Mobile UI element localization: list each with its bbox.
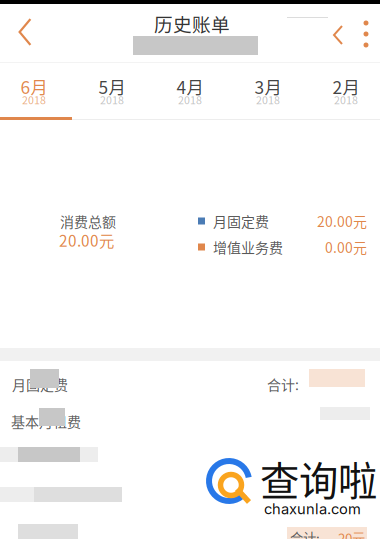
staticText: 2018 <box>22 92 46 107</box>
button[interactable]: Forward <box>327 22 349 48</box>
staticText: 历史账单 <box>154 10 230 37</box>
staticText: 3月 <box>254 74 281 99</box>
staticText: 合计: <box>290 528 320 539</box>
staticText: 查询啦 <box>260 450 377 507</box>
staticText: 合计: <box>267 374 299 394</box>
staticText: 2018 <box>178 92 202 107</box>
button[interactable]: 6月 <box>0 71 72 125</box>
staticText: 月固定费 <box>213 211 269 231</box>
staticText: 2月 <box>332 74 359 99</box>
staticText: 20.00元 <box>59 229 114 251</box>
staticText: 4月 <box>176 74 203 99</box>
button[interactable]: More options <box>356 19 376 49</box>
staticText: 20元 <box>338 528 365 539</box>
button[interactable]: 3月 <box>230 71 306 125</box>
button[interactable]: 5月 <box>74 71 150 125</box>
button[interactable]: 4月 <box>152 71 228 125</box>
staticText: 2018 <box>256 92 280 107</box>
staticText: 消费总额 <box>60 211 116 231</box>
staticText: 6月 <box>20 74 47 99</box>
staticText: 5月 <box>98 74 125 99</box>
staticText: 2018 <box>334 92 358 107</box>
staticText: 基本月租费 <box>11 411 81 431</box>
staticText: 20.00元 <box>317 211 367 231</box>
staticText: chaxunla.com <box>264 500 361 518</box>
staticText: 增值业务费 <box>213 237 283 257</box>
button[interactable]: 2月 <box>308 71 380 125</box>
button[interactable]: Back <box>6 10 44 54</box>
staticText: 0.00元 <box>325 237 367 257</box>
staticText: 2018 <box>100 92 124 107</box>
staticText: 月固定费 <box>12 374 68 394</box>
